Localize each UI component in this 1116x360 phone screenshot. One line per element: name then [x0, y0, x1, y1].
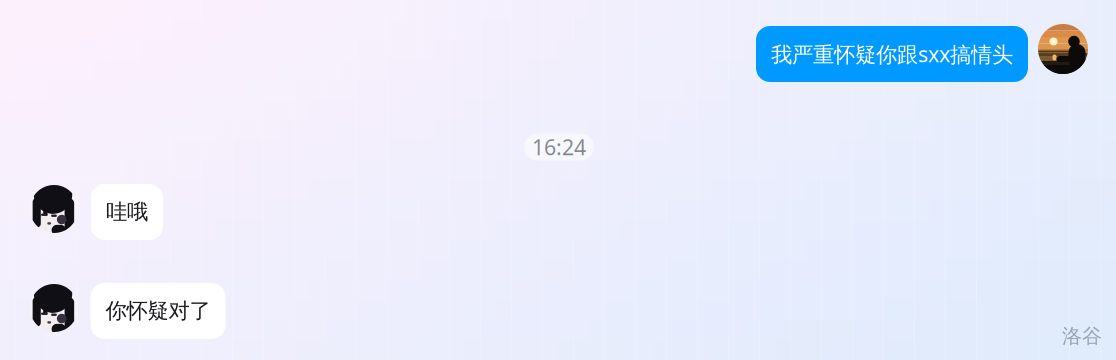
button[interactable]: 你怀疑对了 [90, 283, 225, 339]
staticText: 16:24 [532, 133, 586, 161]
button[interactable]: Contact profile photo [30, 284, 78, 332]
staticText: 你怀疑对了 [105, 298, 210, 324]
button[interactable]: Contact profile photo [30, 185, 78, 233]
staticText: 我严重怀疑你跟sxx搞情头 [771, 40, 1013, 68]
button[interactable]: 我严重怀疑你跟sxx搞情头 [756, 26, 1028, 82]
staticText: 洛谷 [1062, 324, 1102, 348]
staticText: 哇哦 [106, 199, 148, 225]
button[interactable]: 哇哦 [91, 184, 163, 240]
button[interactable]: Your profile photo [1038, 24, 1088, 74]
